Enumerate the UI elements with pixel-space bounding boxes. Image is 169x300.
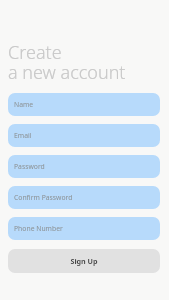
staticText: Password	[14, 162, 45, 171]
staticText: Phone Number	[14, 224, 63, 233]
staticText: Name	[14, 100, 34, 109]
button[interactable]: Confirm Password	[8, 186, 160, 209]
button[interactable]: Password	[8, 155, 160, 178]
staticText: Sign Up	[70, 256, 98, 266]
staticText: Create	[8, 40, 62, 65]
button[interactable]: Name	[8, 93, 160, 116]
button[interactable]: Sign Up	[8, 249, 160, 273]
staticText: a new account	[8, 60, 126, 85]
staticText: Email	[14, 131, 32, 140]
staticText: Confirm Password	[14, 193, 73, 202]
button[interactable]: Email	[8, 124, 160, 147]
button[interactable]: Phone Number	[8, 217, 160, 240]
